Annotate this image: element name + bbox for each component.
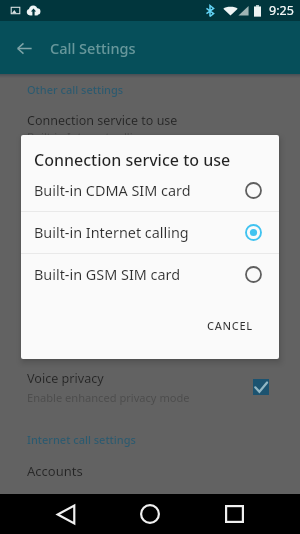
staticText: Accounts	[27, 462, 83, 480]
staticText: Other call settings	[27, 82, 124, 97]
staticText: Connection service to use	[27, 112, 178, 129]
staticText: Built-in Internet calling	[27, 129, 147, 144]
staticText: Built-in CDMA SIM card	[34, 181, 245, 201]
button[interactable]: Voice privacy	[0, 368, 300, 406]
staticText: Internet call settings	[27, 432, 136, 447]
button[interactable]: Back	[46, 494, 86, 534]
button[interactable]: Navigate up	[0, 24, 48, 72]
staticText: Built-in GSM SIM card	[34, 265, 245, 285]
staticText: Voice privacy	[27, 370, 104, 387]
button[interactable]: Built-in CDMA SIM card	[21, 170, 279, 211]
staticText: CANCEL	[207, 318, 253, 333]
button[interactable]: Recent apps	[214, 494, 254, 534]
button[interactable]: CANCEL	[201, 313, 259, 338]
staticText: Call Settings	[50, 38, 136, 58]
staticText: Enable enhanced privacy mode	[27, 390, 190, 405]
staticText: 9:25	[269, 2, 294, 19]
staticText: Built-in Internet calling	[34, 223, 245, 243]
button[interactable]: Built-in GSM SIM card	[21, 254, 279, 295]
staticText: Connection service to use	[34, 149, 231, 171]
button[interactable]: Built-in Internet calling	[21, 212, 279, 253]
button[interactable]: Home	[130, 494, 170, 534]
